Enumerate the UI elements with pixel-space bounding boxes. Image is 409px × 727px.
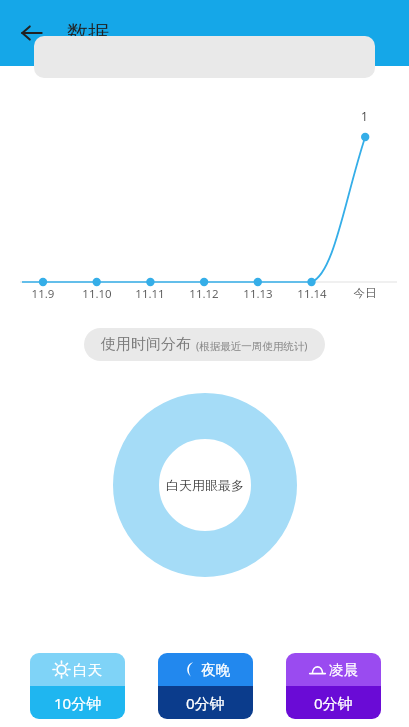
staticText: 使用时间分布: [101, 335, 191, 354]
button[interactable]: Back: [13, 14, 51, 52]
staticText: 11.12: [178, 286, 230, 302]
staticText: 10分钟: [54, 693, 102, 713]
staticText: 11.14: [286, 286, 338, 302]
staticText: 白天: [73, 661, 102, 679]
staticText: 数据: [67, 20, 109, 46]
staticText: 1: [361, 108, 368, 124]
staticText: 今日: [339, 286, 391, 300]
staticText: 凌晨: [329, 661, 358, 679]
staticText: 0分钟: [186, 693, 225, 713]
staticText: 白天用眼最多: [166, 477, 244, 493]
button[interactable]: 使用时间分布: [84, 328, 325, 361]
button[interactable]: 白天: [30, 653, 125, 719]
button[interactable]: 凌晨: [286, 653, 381, 719]
staticText: 11.11: [124, 286, 176, 302]
staticText: (根据最近一周使用统计): [196, 339, 308, 353]
button[interactable]: 夜晚: [158, 653, 253, 719]
staticText: 夜晚: [201, 661, 230, 679]
staticText: 11.10: [71, 286, 123, 302]
staticText: 0分钟: [314, 693, 353, 713]
staticText: 11.9: [17, 286, 69, 302]
button[interactable]: [34, 36, 375, 78]
staticText: 11.13: [232, 286, 284, 302]
